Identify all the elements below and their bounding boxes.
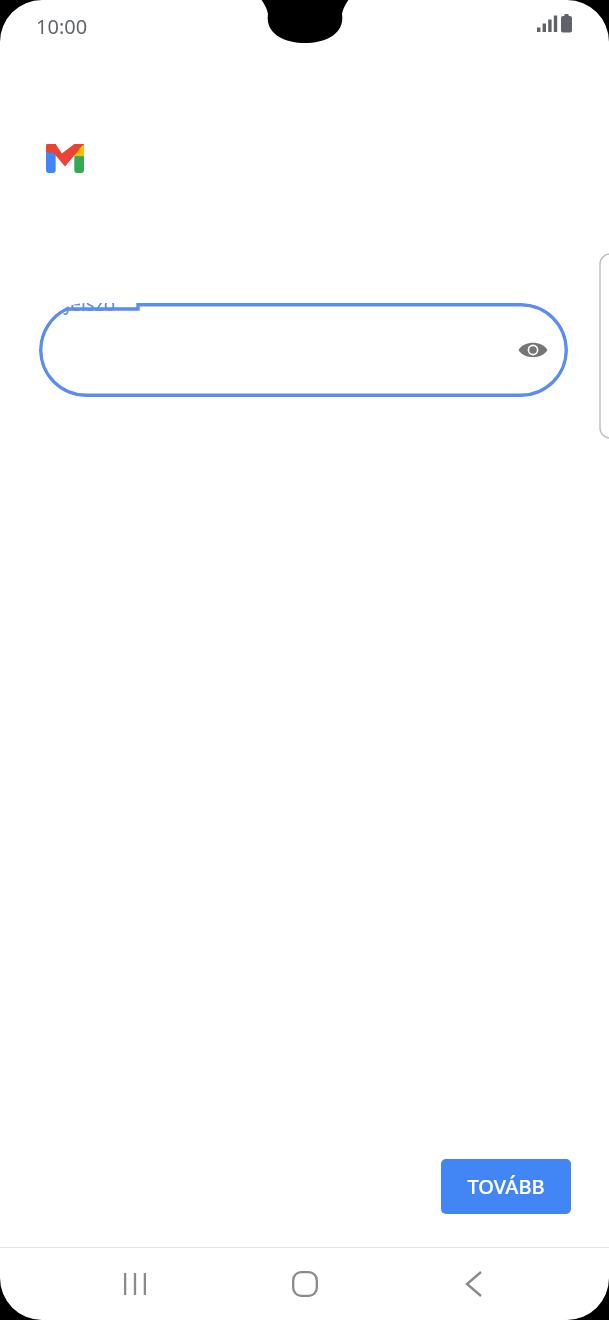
button[interactable]: TOVÁBB <box>441 1159 571 1214</box>
button[interactable]: Recents <box>100 1249 170 1319</box>
button[interactable]: Jelszó megjelenítése <box>511 328 555 372</box>
button[interactable]: Jelszó <box>39 303 568 397</box>
button[interactable]: Home <box>270 1249 340 1319</box>
staticText: 10:00 <box>36 13 88 40</box>
staticText: Jelszó <box>65 303 116 317</box>
staticText: TOVÁBB <box>467 1173 545 1200</box>
button[interactable]: Back <box>439 1249 509 1319</box>
